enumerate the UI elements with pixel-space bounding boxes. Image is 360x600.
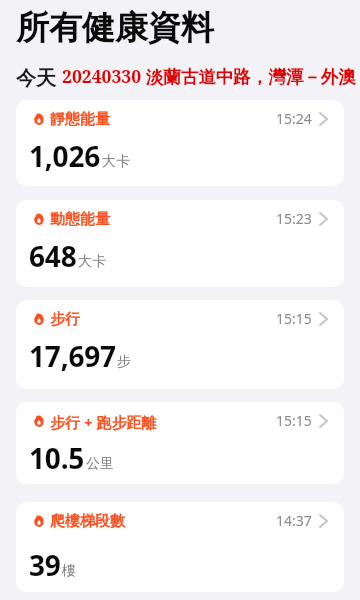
button[interactable]: 步行 + 跑步距離 [16,402,344,484]
staticText: 靜態能量 [50,110,110,129]
staticText: 20240330 淡蘭古道中路，灣潭－外澳 [62,64,356,88]
button[interactable]: 步行 [16,300,344,389]
staticText: 1,026 [29,137,101,175]
staticText: 39 [29,546,61,584]
staticText: 14:37 [276,511,312,530]
staticText: 樓 [62,562,76,580]
staticText: 所有健康資料 [16,7,214,49]
button[interactable]: 爬樓梯段數 [16,502,344,592]
staticText: 公里 [86,455,114,473]
button[interactable]: 靜態能量 [16,100,344,186]
staticText: 大卡 [102,153,130,171]
staticText: 步行 + 跑步距離 [50,412,157,432]
staticText: 648 [29,237,77,275]
staticText: 動態能量 [50,210,110,229]
staticText: 10.5 [29,439,85,477]
staticText: 爬樓梯段數 [50,512,125,531]
staticText: 15:23 [276,209,312,228]
staticText: 今天 [16,64,62,91]
staticText: 17,697 [29,337,116,375]
staticText: 15:24 [276,109,312,128]
staticText: 步行 [50,310,80,329]
staticText: 步 [117,353,131,371]
staticText: 大卡 [78,253,106,271]
button[interactable]: 動態能量 [16,200,344,287]
staticText: 15:15 [276,309,312,328]
staticText: 15:15 [276,411,312,430]
